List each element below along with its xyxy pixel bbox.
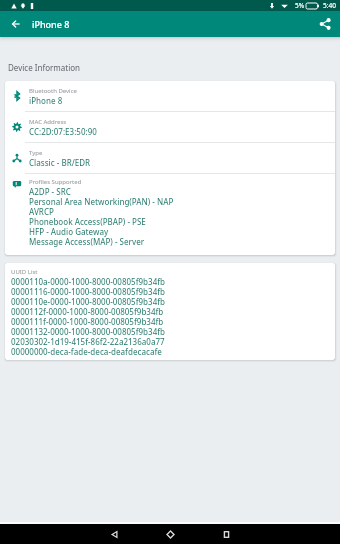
staticText: 5% bbox=[295, 1, 305, 10]
staticText: MAC Address bbox=[29, 118, 67, 126]
button[interactable]: Back bbox=[86, 524, 142, 544]
button[interactable]: Profiles Supported bbox=[5, 174, 335, 255]
staticText: Classic - BR/EDR bbox=[29, 157, 91, 168]
staticText: 0000110a-0000-1000-8000-00805f9b34fb 000… bbox=[11, 276, 166, 357]
staticText: iPhone 8 bbox=[29, 95, 63, 106]
staticText: iPhone 8 bbox=[32, 18, 70, 30]
button[interactable]: MAC Address bbox=[5, 112, 335, 142]
staticText: Profiles Supported bbox=[29, 178, 82, 186]
staticText: 5:40 bbox=[323, 1, 336, 10]
button[interactable]: Recents bbox=[198, 524, 254, 544]
staticText: A2DP - SRC Personal Area Networking(PAN)… bbox=[29, 186, 174, 247]
button[interactable]: Bluetooth Device bbox=[5, 81, 335, 111]
button[interactable]: Home bbox=[142, 524, 198, 544]
staticText: Bluetooth Device bbox=[29, 87, 77, 95]
staticText: Device Information bbox=[8, 62, 81, 73]
button[interactable]: Type bbox=[5, 143, 335, 173]
staticText: UUID List bbox=[11, 268, 38, 276]
staticText: CC:2D:07:E3:50:90 bbox=[29, 126, 97, 137]
staticText: Type bbox=[29, 149, 43, 157]
button[interactable]: Share bbox=[312, 11, 338, 37]
button[interactable]: Back bbox=[4, 11, 28, 37]
